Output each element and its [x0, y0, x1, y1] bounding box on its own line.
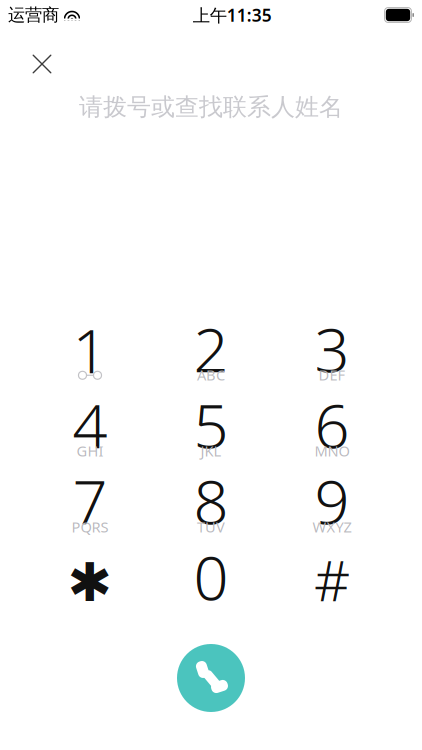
- staticText: ABC: [197, 365, 225, 384]
- button[interactable]: 4 GHI: [35, 398, 145, 464]
- staticText: 5: [193, 384, 228, 465]
- button[interactable]: 0: [156, 550, 266, 616]
- staticText: ✱: [67, 552, 112, 613]
- staticText: 9: [314, 460, 349, 541]
- staticText: #: [314, 542, 350, 617]
- button[interactable]: 3 DEF: [277, 322, 387, 388]
- staticText: 6: [314, 384, 349, 465]
- staticText: 0: [193, 536, 228, 617]
- button[interactable]: 1: [35, 322, 145, 388]
- staticText: DEF: [318, 365, 345, 384]
- button[interactable]: #: [277, 550, 387, 616]
- button[interactable]: 8 TUV: [156, 474, 266, 540]
- staticText: 请拨号或查找联系人姓名: [79, 92, 343, 122]
- staticText: 4: [72, 384, 107, 465]
- staticText: 3: [314, 308, 349, 389]
- staticText: 8: [193, 460, 228, 541]
- staticText: 2: [193, 308, 228, 389]
- staticText: TUV: [197, 517, 225, 536]
- button[interactable]: Close: [20, 42, 64, 86]
- staticText: JKL: [200, 441, 221, 460]
- staticText: 运营商: [8, 4, 59, 26]
- staticText: GHI: [76, 441, 103, 460]
- button[interactable]: 9 WXYZ: [277, 474, 387, 540]
- button[interactable]: 6 MNO: [277, 398, 387, 464]
- staticText: 7: [72, 460, 107, 541]
- staticText: 上午11:35: [193, 3, 272, 26]
- staticText: WXYZ: [312, 517, 351, 536]
- staticText: 1: [72, 309, 107, 390]
- button[interactable]: 2 ABC: [156, 322, 266, 388]
- button[interactable]: 7 PQRS: [35, 474, 145, 540]
- button[interactable]: Call: [177, 644, 245, 712]
- staticText: MNO: [314, 441, 349, 460]
- button[interactable]: 5 JKL: [156, 398, 266, 464]
- button[interactable]: ✱: [35, 550, 145, 616]
- staticText: PQRS: [71, 517, 108, 536]
